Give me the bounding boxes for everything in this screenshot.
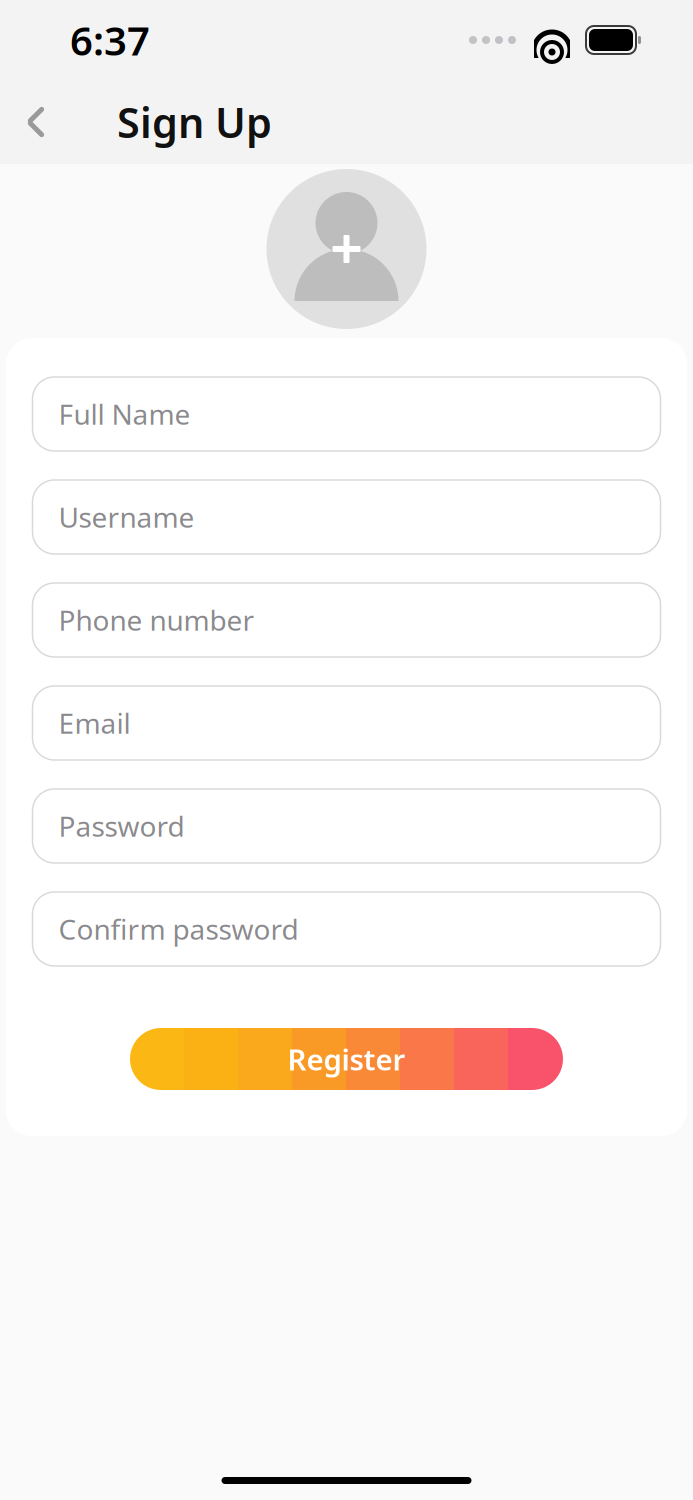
- button[interactable]: Add profile photo: [266, 169, 426, 329]
- button[interactable]: Back: [0, 80, 72, 164]
- staticText: Email: [58, 704, 130, 742]
- staticText: Password: [58, 807, 184, 845]
- button[interactable]: Register: [130, 1028, 563, 1090]
- staticText: Full Name: [58, 395, 190, 433]
- staticText: Phone number: [58, 601, 254, 639]
- staticText: Username: [58, 498, 194, 536]
- staticText: 6:37: [70, 13, 150, 66]
- staticText: Confirm password: [58, 910, 298, 948]
- staticText: Sign Up: [117, 95, 272, 149]
- staticText: Register: [287, 1039, 405, 1078]
